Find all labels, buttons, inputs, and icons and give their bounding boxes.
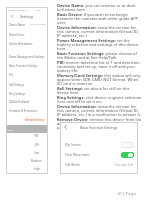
staticText: Text [8, 128, 13, 131]
staticText: Basic Function Settings [80, 125, 118, 130]
staticText: Device Information: show the version for… [57, 104, 142, 117]
button[interactable]: Ring Settings [6, 90, 48, 97]
button[interactable]: Back [61, 122, 70, 131]
staticText: Firmware & Permission [9, 109, 38, 113]
staticText: Ring Settings: click device ringtone sel… [57, 95, 142, 104]
button[interactable]: Low [6, 149, 48, 156]
staticText: PIR [34, 134, 39, 138]
staticText: File [9, 73, 14, 77]
button[interactable]: High [6, 165, 48, 172]
staticText: Low [34, 151, 40, 155]
staticText: Device Information [9, 42, 33, 46]
button[interactable]: Reset Device [6, 31, 48, 38]
staticText: Ring Settings [9, 92, 26, 96]
button[interactable]: PIR [6, 132, 48, 139]
button[interactable]: Talk Mode [60, 160, 138, 170]
button[interactable]: Bell Settings [6, 81, 48, 88]
staticText: Basic Function Settings [9, 64, 38, 68]
button[interactable]: Power Management Settings [6, 53, 48, 60]
staticText: Power Management Settings [9, 55, 45, 59]
button[interactable]: Off [6, 141, 48, 148]
button[interactable]: Firmware & Permission [6, 107, 48, 114]
staticText: Remove Device: remove this device from l… [57, 117, 142, 130]
staticText: Device Name: you can rename or to dual-b… [57, 3, 142, 12]
staticText: Flip Screen [65, 143, 81, 147]
button[interactable]: Medium [6, 157, 48, 164]
staticText: Settings [20, 14, 34, 19]
staticText: Medium [31, 159, 42, 163]
button[interactable]: Remove Device [6, 116, 48, 123]
staticText: Q&A & Feedback [9, 100, 30, 104]
button[interactable]: Basic Function Settings [6, 62, 48, 69]
button[interactable]: Q&A & Feedback [6, 98, 48, 105]
staticText: Remove Device [25, 118, 45, 122]
button[interactable]: Basic Function Settings [60, 122, 138, 133]
staticText: Off [35, 143, 39, 147]
button[interactable]: Back [9, 13, 16, 20]
staticText: Time Watermark [65, 153, 90, 157]
button[interactable]: File [6, 71, 48, 78]
button[interactable]: Device Name [6, 21, 48, 28]
staticText: Bell Settings: set also a for still on t… [57, 86, 142, 95]
button[interactable]: Settings [6, 13, 48, 20]
staticText: Two-way Talk [114, 163, 134, 167]
staticText: Bell Settings [9, 83, 25, 87]
staticText: PIR: motion detection list of 1 and dete… [57, 60, 142, 73]
staticText: Memory/Card Settings: this option will o… [57, 73, 142, 86]
staticText: Basic Device: if you wish to exchange be… [57, 12, 142, 25]
button[interactable]: Flip Screen [60, 140, 138, 150]
staticText: Basic Function Settings: please choose o… [57, 51, 142, 60]
staticText: Device Name [9, 23, 25, 27]
staticText: Talk Mode [65, 163, 80, 167]
staticText: Power Management Settings: set the batte… [57, 38, 142, 51]
button[interactable]: Time Watermark [60, 150, 138, 160]
staticText: xx China Mobile 4G [8, 9, 28, 12]
staticText: 61 | P a g e [118, 191, 137, 196]
staticText: High [34, 167, 40, 171]
button[interactable]: Device Information [6, 40, 48, 47]
staticText: 18:40 [35, 9, 41, 12]
staticText: Reset Device [9, 33, 25, 37]
staticText: Indoor camera [30, 23, 46, 26]
staticText: Device Information: show the version for… [57, 25, 142, 38]
